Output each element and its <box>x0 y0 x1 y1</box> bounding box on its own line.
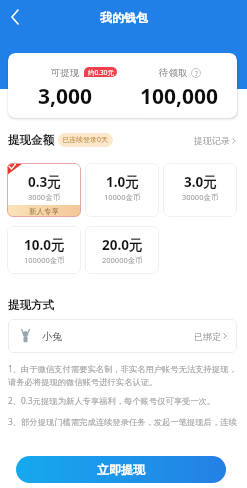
staticText: 30000金币 <box>182 192 219 202</box>
staticText: 提现记录 <box>194 135 230 146</box>
button[interactable]: 20.0元 <box>85 226 159 274</box>
staticText: 约0.30元 <box>88 68 114 77</box>
staticText: 3,000 <box>38 82 93 111</box>
staticText: 已绑定 <box>194 331 221 342</box>
staticText: 1.0元 <box>106 173 139 191</box>
staticText: 待领取 <box>159 67 188 79</box>
staticText: 3、部分提现门槛需完成连续登录任务，发起一笔提现后，连续登录天数将会清零。 <box>8 416 239 427</box>
staticText: 已连续登录0天 <box>62 135 109 145</box>
staticText: 提现方式 <box>8 298 54 312</box>
button[interactable]: 3.0元 <box>163 163 237 217</box>
staticText: 新人专享 <box>29 207 59 216</box>
staticText: 1、由于微信支付需要实名制，非实名用户账号无法支持提现，请务必将提现的微信账号进… <box>8 363 239 387</box>
staticText: 可提现 <box>51 67 80 79</box>
staticText: 2、0.3元提现为新人专享福利，每个账号仅可享受一次。 <box>8 395 216 406</box>
staticText: 100,000 <box>140 82 219 111</box>
button[interactable]: 1.0元 <box>85 163 159 217</box>
staticText: 立即提现 <box>97 462 145 477</box>
staticText: 10000金币 <box>104 192 141 202</box>
staticText: 小兔 <box>42 330 62 343</box>
staticText: 200000金币 <box>102 255 143 265</box>
button[interactable]: 10.0元 <box>7 226 81 274</box>
staticText: 3000金币 <box>28 192 61 202</box>
button[interactable]: 立即提现 <box>16 456 226 483</box>
staticText: ? <box>195 69 198 78</box>
staticText: 提现金额 <box>8 133 54 147</box>
button[interactable]: Back <box>0 2 30 32</box>
staticText: 20.0元 <box>102 236 143 254</box>
staticText: 我的钱包 <box>100 10 148 25</box>
button[interactable]: 0.3元 <box>7 163 81 217</box>
staticText: 0.3元 <box>28 173 61 191</box>
button[interactable]: 小兔 <box>8 319 237 353</box>
staticText: 10.0元 <box>24 236 65 254</box>
button[interactable]: 提现记录 <box>194 135 238 146</box>
staticText: 3.0元 <box>184 173 217 191</box>
staticText: 100000金币 <box>24 255 65 265</box>
